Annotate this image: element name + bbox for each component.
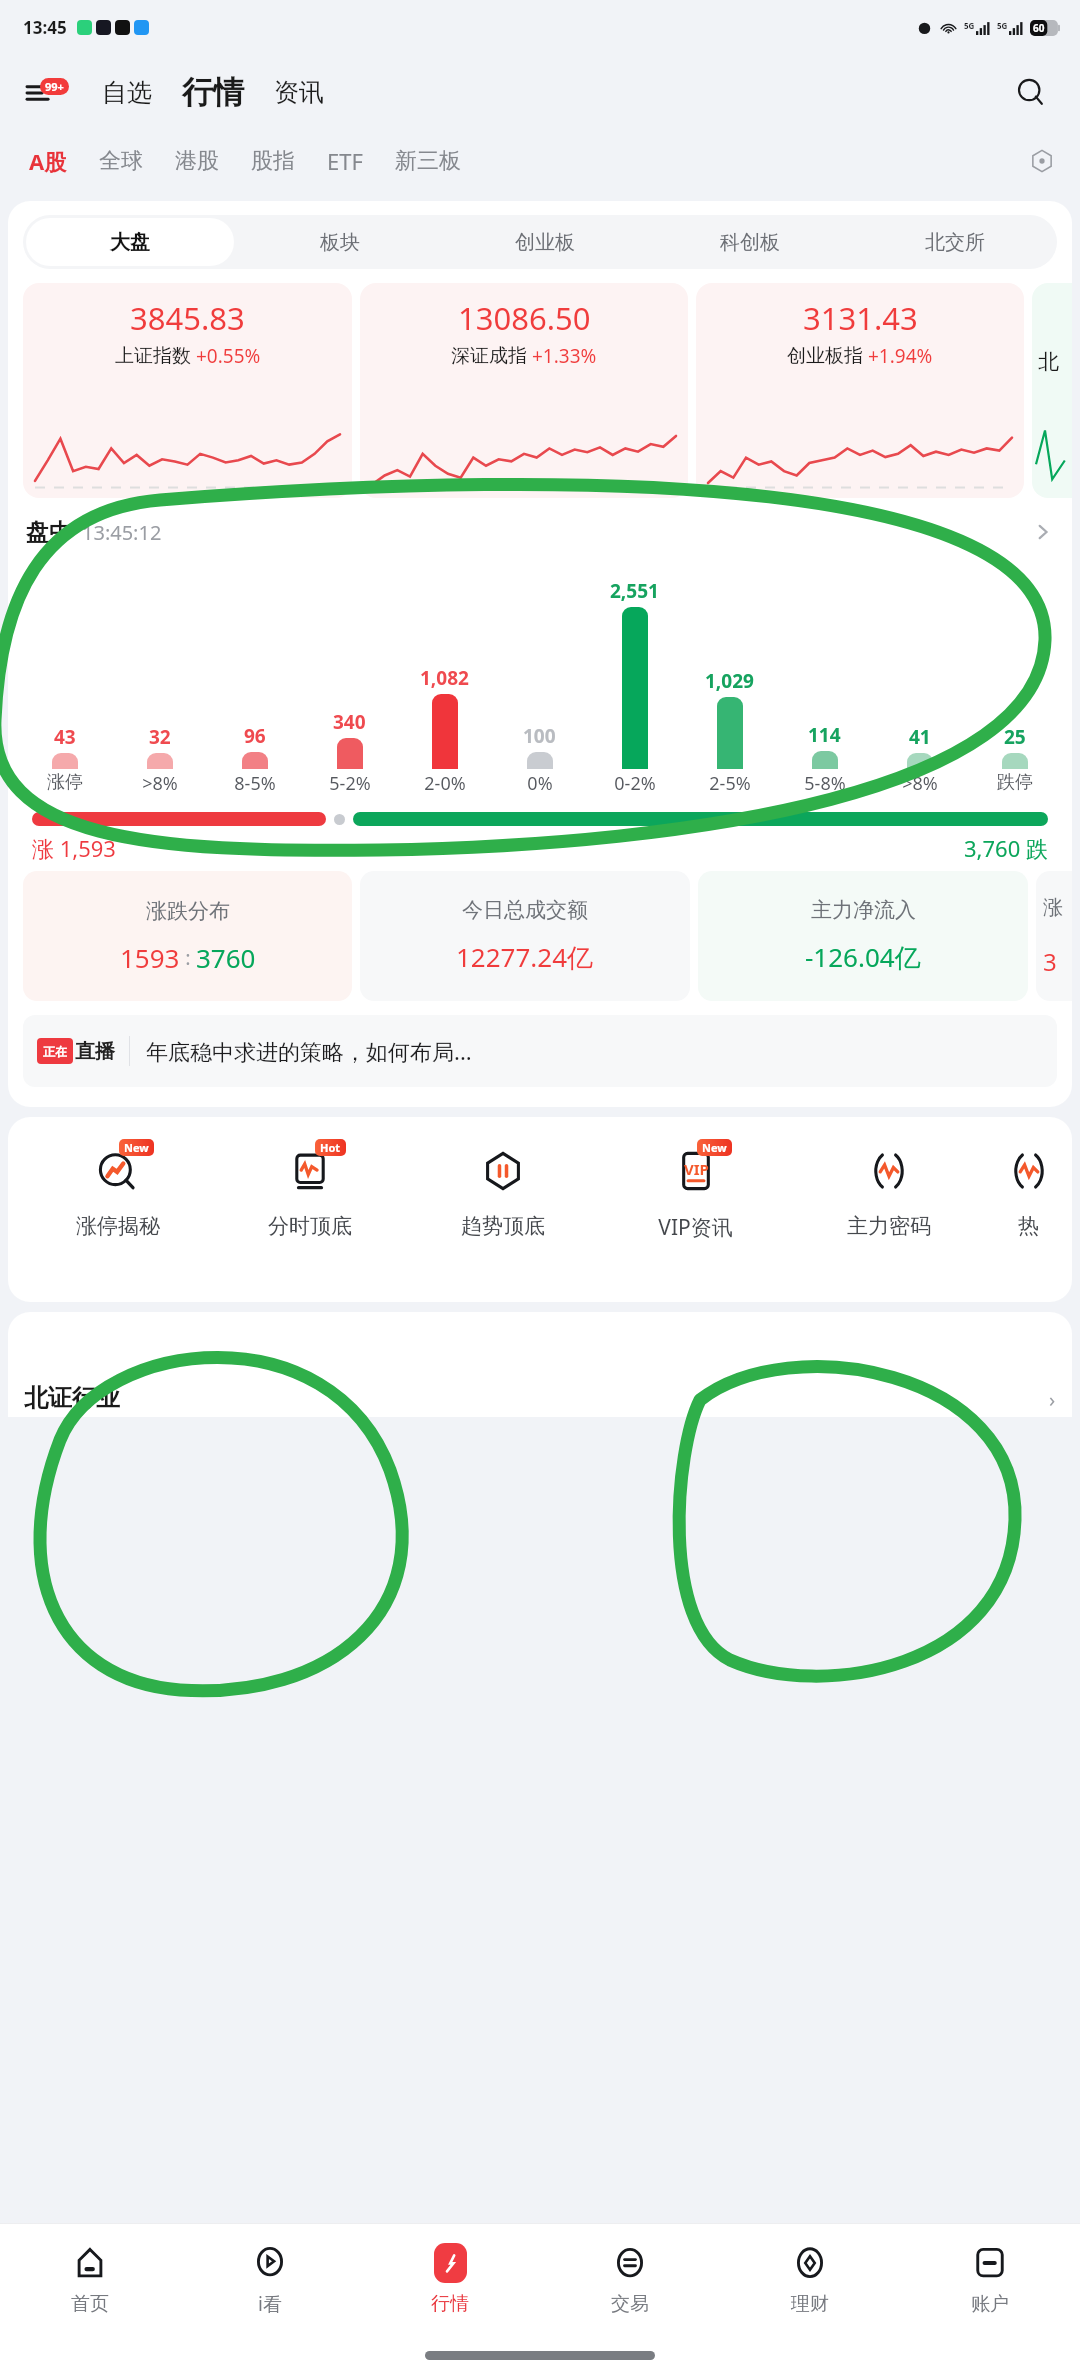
staticText: 25 [1004,724,1026,750]
staticText: 北 [1038,349,1059,375]
button[interactable]: 港股 [172,141,222,181]
staticText: 板块 [320,230,360,255]
staticText: 北证行业 [24,1383,120,1413]
staticText: 上证指数 [115,344,191,368]
staticText: 股指 [251,147,295,175]
staticText: +1.94% [868,343,933,369]
staticText: 3760 [196,940,256,975]
button[interactable]: 北证行业 [24,1383,1056,1413]
staticText: 分时顶底 [268,1213,352,1239]
staticText: 13086.50 [458,297,591,339]
staticText: +1.33% [532,343,597,369]
button[interactable]: 新三板 [392,141,464,181]
staticText: 100 [523,723,556,749]
staticText: 1,082 [420,665,469,691]
staticText: 首页 [71,2292,109,2316]
staticText: 0-2% [614,771,656,796]
staticText: 13:45:12 [82,519,162,546]
button[interactable]: 全球 [96,141,146,181]
button[interactable]: 主力净流入 [698,871,1028,1001]
staticText: 涨跌分布 [146,898,230,924]
staticText: 自选 [102,77,152,108]
button[interactable]: 理财 [720,2224,900,2334]
button[interactable]: 热 [985,1143,1072,1239]
staticText: 13:45 [23,16,67,39]
button[interactable]: 搜索 [1008,70,1054,116]
button[interactable]: 大盘 [26,218,234,266]
button[interactable]: 3845.83 [23,283,352,498]
button[interactable]: A股 [26,140,70,182]
staticText: 涨停 [47,771,83,794]
staticText: 直播 [75,1039,115,1064]
staticText: 趋势顶底 [461,1213,545,1239]
staticText: 12277.24亿 [456,939,594,975]
button[interactable]: ETF [324,140,366,182]
staticText: 3845.83 [130,297,245,339]
button[interactable]: 创业板 [445,218,644,266]
button[interactable]: 13086.50 [360,283,688,498]
button[interactable]: New [22,1143,214,1239]
button[interactable]: 3131.43 [696,283,1024,498]
button[interactable]: 自选 [98,71,156,114]
staticText: 盘中 [26,518,72,547]
staticText: >8% [142,771,178,796]
staticText: 资讯 [274,77,324,108]
staticText: New [124,1140,149,1155]
button[interactable]: 首页 [0,2224,180,2334]
staticText: 41 [909,724,931,750]
button[interactable]: 正在 [37,1015,1043,1087]
button[interactable]: 主力密码 [792,1143,985,1239]
staticText: 主力净流入 [811,897,916,923]
button[interactable]: 科创板 [650,218,849,266]
staticText: 5G [964,20,975,31]
staticText: 96 [244,723,266,749]
staticText: 5-2% [329,771,371,796]
staticText: +0.55% [196,343,261,369]
staticText: 正在 [43,1044,67,1059]
staticText: 32 [149,724,171,750]
button[interactable]: 股指 [248,141,298,181]
staticText: 涨停揭秘 [76,1213,160,1239]
staticText: 科创板 [720,230,780,255]
button[interactable]: 设置 [1022,141,1062,181]
staticText: 账户 [971,2292,1009,2316]
button[interactable]: 交易 [540,2224,720,2334]
staticText: 年底稳中求进的策略，如何布局... [146,1036,472,1066]
button[interactable]: i看 [180,2224,360,2334]
staticText: 大盘 [110,230,150,255]
staticText: i看 [258,2291,282,2317]
staticText: 全球 [99,147,143,175]
staticText: A股 [29,146,67,176]
button[interactable]: VIP [599,1143,792,1242]
button[interactable]: 菜单 99+ [26,73,78,113]
staticText: 2-0% [424,771,466,796]
button[interactable]: 资讯 [270,71,328,114]
staticText: 114 [808,722,841,748]
button[interactable]: 涨 [1036,871,1072,1001]
staticText: VIP资讯 [658,1213,733,1242]
button[interactable]: 行情 [360,2224,540,2334]
button[interactable]: 盘中 [26,510,1054,554]
button[interactable]: 账户 [900,2224,1080,2334]
staticText: >8% [902,771,938,796]
button[interactable]: 今日总成交额 [360,871,690,1001]
button[interactable]: 板块 [240,218,439,266]
staticText: VIP [684,1159,709,1179]
staticText: 3,760 跌 [964,833,1048,863]
staticText: 60 [1033,21,1045,35]
button[interactable]: 行情 [178,71,248,114]
staticText: 跌停 [997,771,1033,794]
staticText: : [180,944,196,971]
staticText: 行情 [431,2292,469,2316]
staticText: 340 [333,709,366,735]
staticText: 北交所 [925,230,985,255]
staticText: 3 [1043,945,1057,978]
staticText: -126.04亿 [805,939,921,975]
staticText: 深证成指 [451,344,527,368]
button[interactable]: Hot [214,1143,406,1239]
button[interactable]: 北 [1032,283,1072,498]
button[interactable]: 北交所 [855,218,1054,266]
button[interactable]: 趋势顶底 [406,1143,599,1239]
staticText: 涨 1,593 [32,833,116,863]
button[interactable]: 涨跌分布 [23,871,352,1001]
